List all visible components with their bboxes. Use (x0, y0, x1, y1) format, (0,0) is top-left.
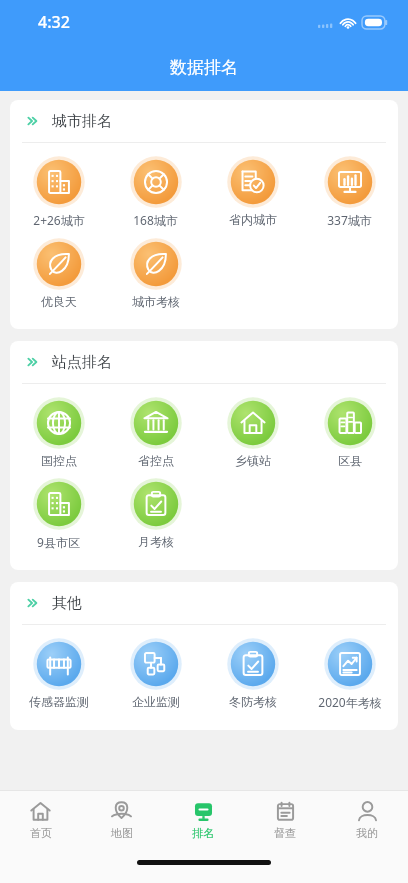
button[interactable]: 城市考核 (107, 238, 204, 319)
staticText: 乡镇站 (235, 453, 271, 468)
staticText: 传感器监测 (29, 694, 89, 709)
staticText: 企业监测 (132, 694, 180, 709)
staticText: 数据排名 (170, 57, 238, 78)
staticText: 我的 (356, 826, 378, 840)
staticText: 其他 (52, 594, 82, 613)
button[interactable]: 地图 (81, 791, 162, 849)
staticText: 城市排名 (52, 112, 112, 131)
staticText: 站点排名 (52, 353, 112, 372)
button[interactable]: 省内城市 (204, 156, 301, 237)
button[interactable]: 排名 (162, 791, 244, 849)
staticText: 国控点 (41, 453, 77, 468)
staticText: 排名 (192, 826, 214, 840)
staticText: 9县市区 (37, 534, 80, 550)
staticText: 地图 (111, 826, 133, 840)
staticText: 省控点 (138, 453, 174, 468)
button[interactable]: 乡镇站 (204, 397, 301, 478)
staticText: 冬防考核 (229, 694, 277, 709)
staticText: 区县 (338, 453, 362, 468)
button[interactable]: 冬防考核 (204, 638, 301, 719)
button[interactable]: 国控点 (10, 397, 107, 478)
staticText: 2+26城市 (33, 212, 85, 228)
button[interactable]: 督查 (244, 791, 326, 849)
button[interactable]: 优良天 (10, 238, 107, 319)
button[interactable]: 168城市 (107, 156, 204, 238)
button[interactable]: 省控点 (107, 397, 204, 478)
button[interactable]: 我的 (326, 791, 408, 849)
button[interactable]: 2+26城市 (10, 156, 107, 238)
staticText: 优良天 (41, 294, 77, 309)
staticText: 城市考核 (132, 294, 180, 309)
button[interactable]: 9县市区 (10, 478, 107, 560)
staticText: 督查 (274, 826, 296, 840)
staticText: 168城市 (133, 212, 178, 228)
staticText: 2020年考核 (318, 694, 382, 710)
button[interactable]: 2020年考核 (301, 638, 398, 720)
staticText: 省内城市 (229, 212, 277, 227)
staticText: 337城市 (327, 212, 372, 228)
staticText: 4:32 (38, 11, 70, 33)
staticText: 月考核 (138, 534, 174, 549)
button[interactable]: 337城市 (301, 156, 398, 238)
button[interactable]: 区县 (301, 397, 398, 478)
button[interactable]: 传感器监测 (10, 638, 107, 719)
button[interactable]: 首页 (0, 791, 81, 849)
staticText: 首页 (30, 826, 52, 840)
button[interactable]: 月考核 (107, 478, 204, 559)
button[interactable]: 企业监测 (107, 638, 204, 719)
